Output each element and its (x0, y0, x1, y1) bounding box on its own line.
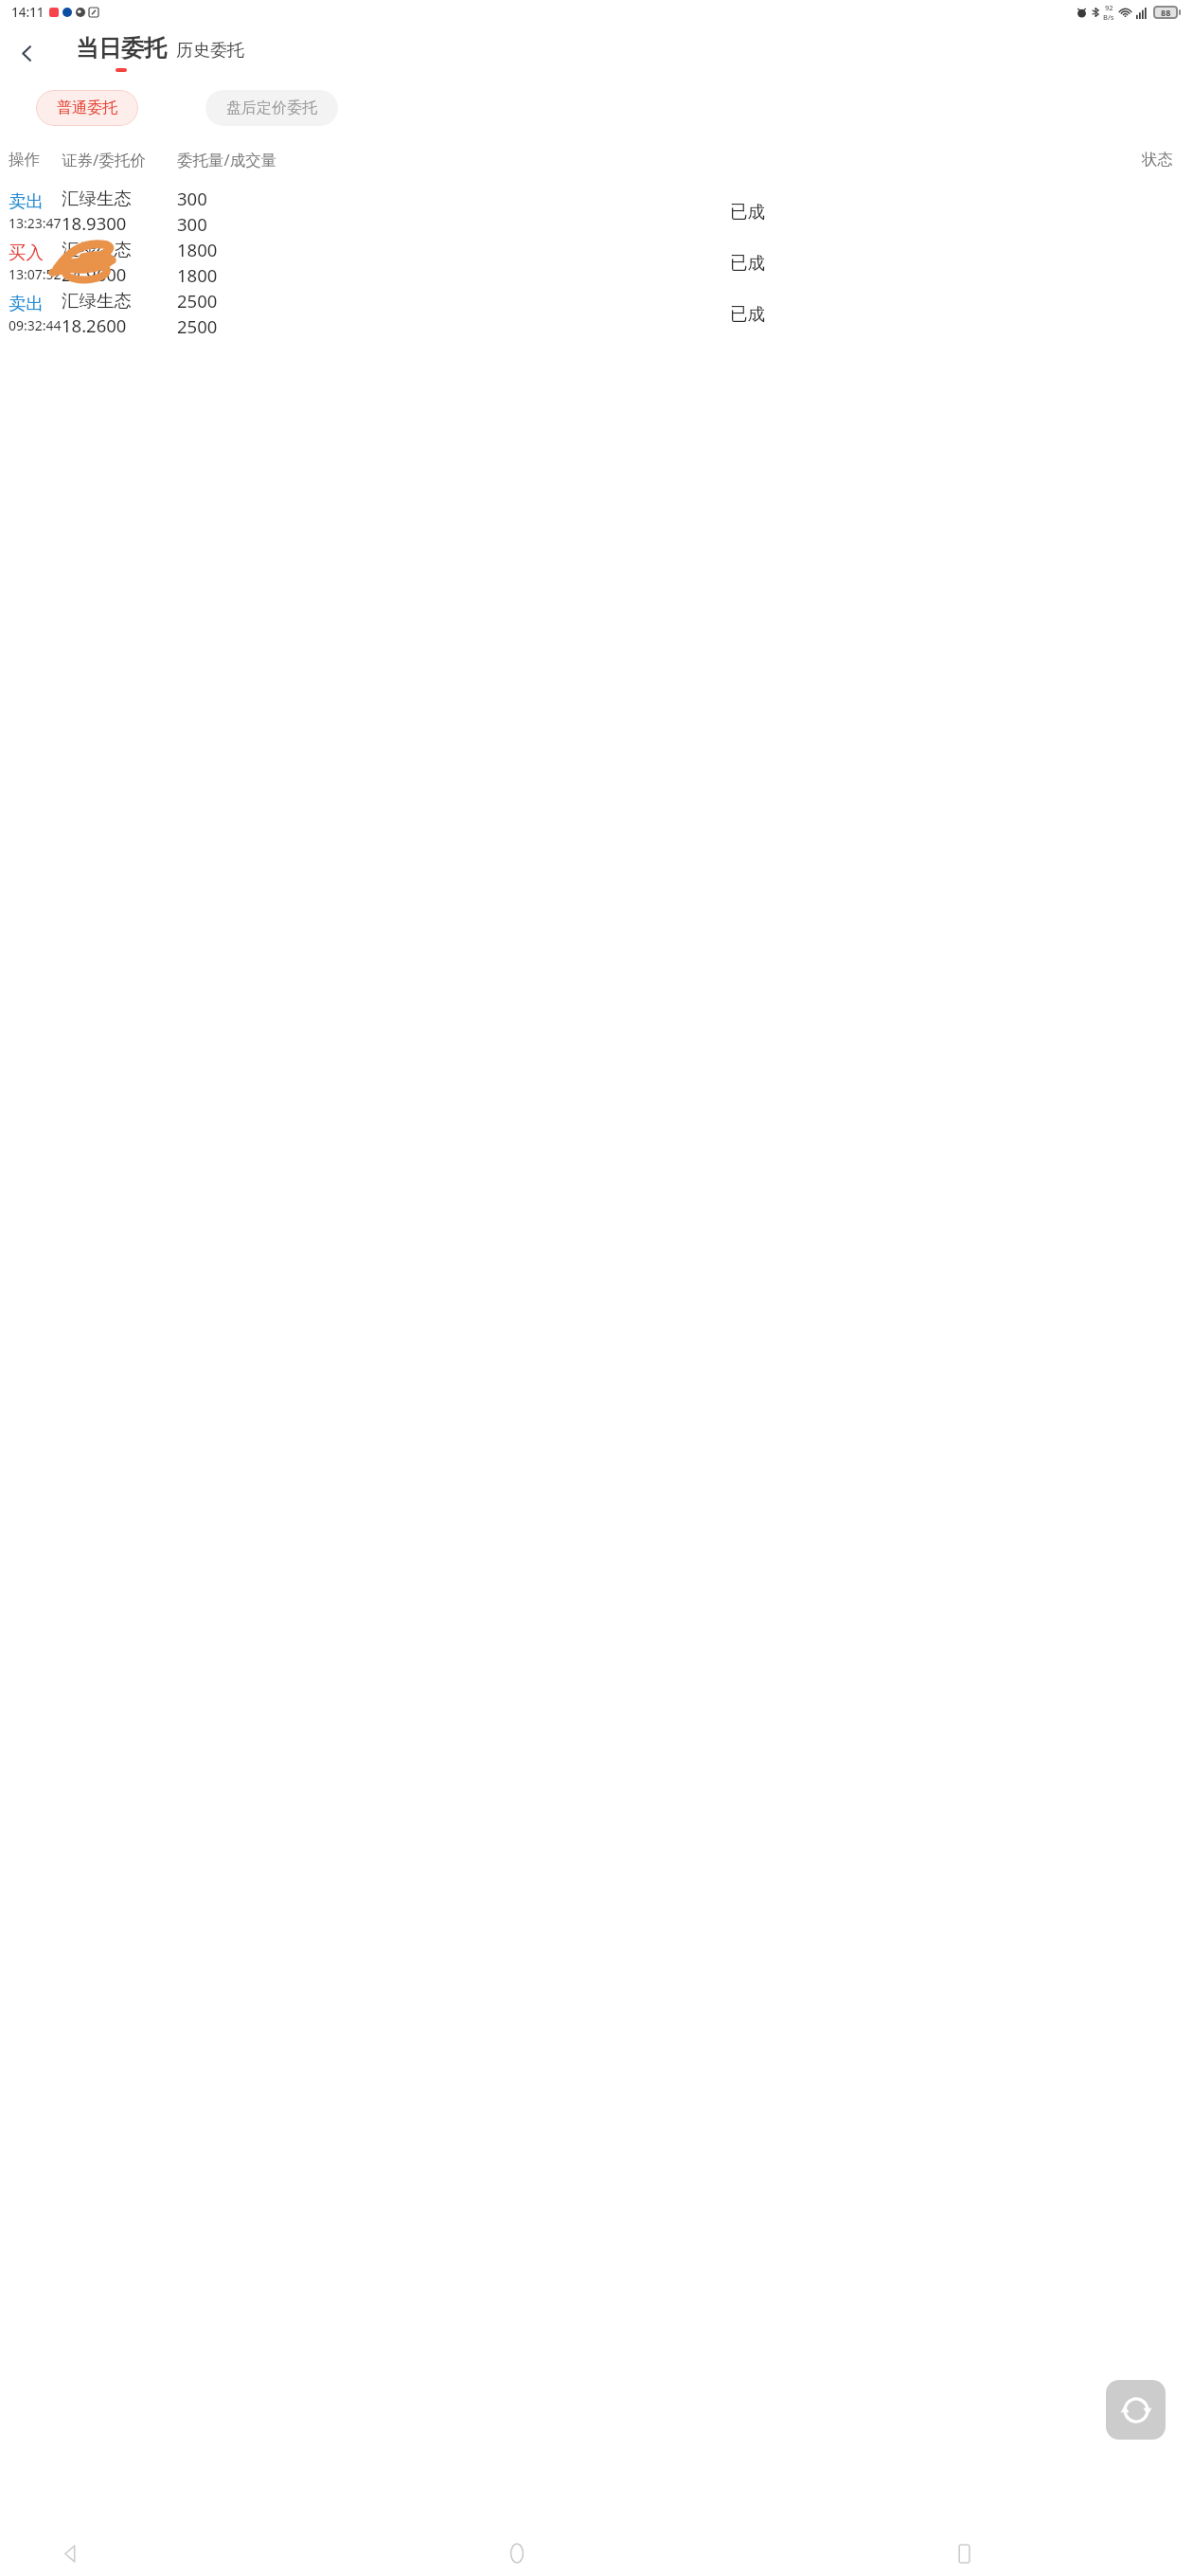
staticText: 14:11 (11, 4, 45, 21)
button[interactable]: 卖出 (0, 186, 1193, 237)
staticText: 操作 (9, 150, 40, 170)
staticText: 委托量/成交量 (177, 149, 277, 170)
staticText: 92 (1105, 3, 1113, 12)
staticText: 1800 (177, 263, 218, 287)
button[interactable]: 卖出 (0, 288, 1193, 339)
button[interactable]: Recent apps (943, 2532, 985, 2574)
button[interactable]: 买入 (0, 237, 1193, 288)
staticText: 13:07:52 (9, 265, 62, 283)
staticText: 09:32:44 (9, 316, 62, 334)
staticText: 18.2600 (62, 313, 127, 337)
staticText: 已成 (730, 201, 765, 223)
staticText: 已成 (730, 303, 765, 325)
staticText: 1800 (177, 238, 218, 261)
staticText: 13:23:47 (9, 214, 62, 232)
staticText: B/s (1103, 12, 1114, 22)
button[interactable]: Back (49, 2532, 91, 2574)
staticText: 88 (1161, 7, 1171, 18)
staticText: 300 (177, 187, 207, 210)
staticText: 卖出 (9, 190, 44, 212)
staticText: 买入 (9, 241, 44, 263)
button[interactable]: 普通委托 (36, 90, 138, 126)
button[interactable]: Refresh (1106, 2380, 1166, 2440)
button[interactable]: Back (4, 30, 49, 76)
button[interactable]: 历史委托 (176, 40, 244, 62)
staticText: 历史委托 (176, 40, 244, 62)
button[interactable]: Home (496, 2532, 538, 2574)
staticText: 卖出 (9, 293, 44, 314)
staticText: 状态 (1142, 150, 1173, 170)
staticText: 24.9600 (62, 262, 127, 286)
staticText: 证券/委托价 (62, 149, 146, 170)
staticText: 盘后定价委托 (226, 98, 317, 117)
staticText: 汇绿生态 (62, 188, 132, 209)
staticText: 2500 (177, 289, 218, 313)
button[interactable]: 当日委托 (76, 34, 167, 63)
staticText: 300 (177, 212, 207, 236)
staticText: 汇绿生态 (62, 239, 132, 260)
staticText: 已成 (730, 252, 765, 274)
staticText: 普通委托 (57, 98, 117, 117)
staticText: 2500 (177, 314, 218, 338)
staticText: 当日委托 (76, 34, 167, 63)
staticText: 汇绿生态 (62, 290, 132, 312)
staticText: 18.9300 (62, 211, 127, 235)
button[interactable]: 盘后定价委托 (205, 90, 338, 126)
